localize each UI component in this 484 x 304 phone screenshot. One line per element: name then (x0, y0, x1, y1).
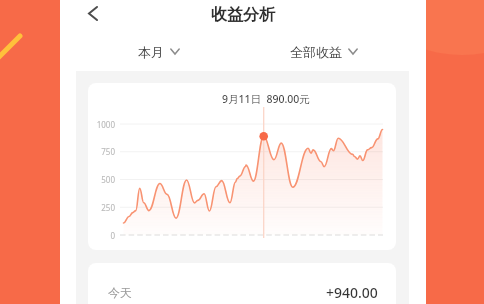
button[interactable]: 全部收益 (290, 44, 358, 60)
button[interactable]: Back (77, 0, 109, 29)
staticText: 今天 (108, 285, 132, 300)
staticText: 全部收益 (290, 44, 342, 60)
button[interactable]: 本月 (138, 44, 180, 60)
staticText: 750 (88, 146, 115, 157)
staticText: 0 (88, 230, 115, 241)
staticText: +940.00 (326, 283, 378, 302)
button[interactable]: 今天 (88, 263, 396, 304)
staticText: 250 (88, 202, 115, 213)
staticText: 收益分析 (211, 5, 275, 25)
staticText: 本月 (138, 44, 164, 60)
staticText: 1000 (88, 119, 115, 130)
staticText: 9月11日 890.00元 (222, 92, 310, 106)
staticText: 500 (88, 174, 115, 185)
